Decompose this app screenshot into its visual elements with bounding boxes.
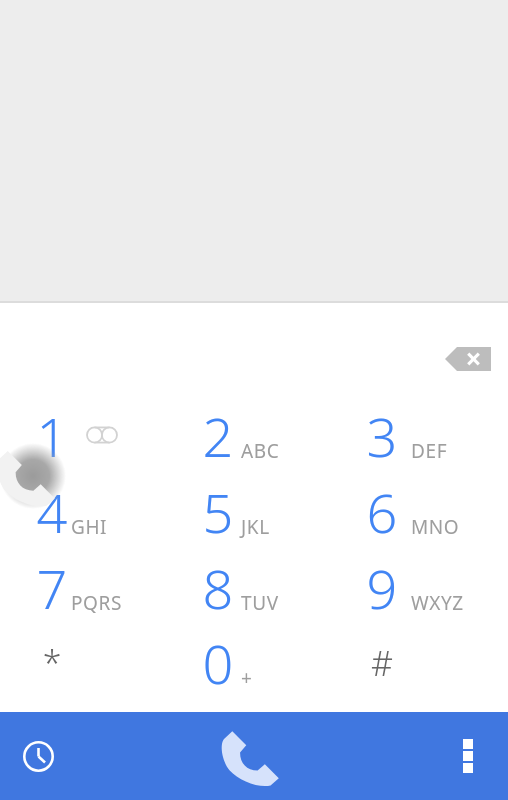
button[interactable] [336, 550, 504, 625]
staticText: 5 [178, 475, 258, 549]
staticText: WXYZ [411, 590, 464, 616]
button[interactable]: More options [440, 728, 496, 784]
staticText: + [241, 665, 252, 691]
staticText: ABC [241, 438, 280, 464]
button[interactable]: Backspace [436, 335, 500, 383]
button[interactable] [6, 550, 174, 625]
staticText: 2 [178, 399, 258, 473]
staticText: PQRS [71, 590, 122, 616]
staticText: * [12, 640, 92, 686]
button[interactable] [172, 474, 340, 549]
staticText: 4 [12, 475, 92, 549]
staticText: DEF [411, 438, 448, 464]
button[interactable] [172, 625, 340, 700]
staticText: 1 [12, 399, 92, 473]
staticText: JKL [241, 514, 270, 540]
staticText: 3 [342, 399, 422, 473]
staticText: GHI [71, 514, 108, 540]
button[interactable] [6, 474, 174, 549]
button[interactable] [336, 625, 504, 700]
staticText: TUV [241, 590, 279, 616]
button[interactable] [172, 550, 340, 625]
button[interactable] [6, 398, 174, 473]
button[interactable] [6, 625, 174, 700]
button[interactable] [336, 474, 504, 549]
button[interactable] [336, 398, 504, 473]
staticText: 0 [178, 626, 258, 700]
staticText: # [342, 640, 422, 686]
staticText: 6 [342, 475, 422, 549]
staticText: MNO [411, 514, 460, 540]
button[interactable]: Dialpad [211, 713, 297, 799]
button[interactable]: Recents [10, 728, 66, 784]
staticText: 7 [12, 551, 92, 625]
staticText: 8 [178, 551, 258, 625]
button[interactable] [172, 398, 340, 473]
button[interactable]: Dial [0, 443, 66, 509]
staticText: 9 [342, 551, 422, 625]
